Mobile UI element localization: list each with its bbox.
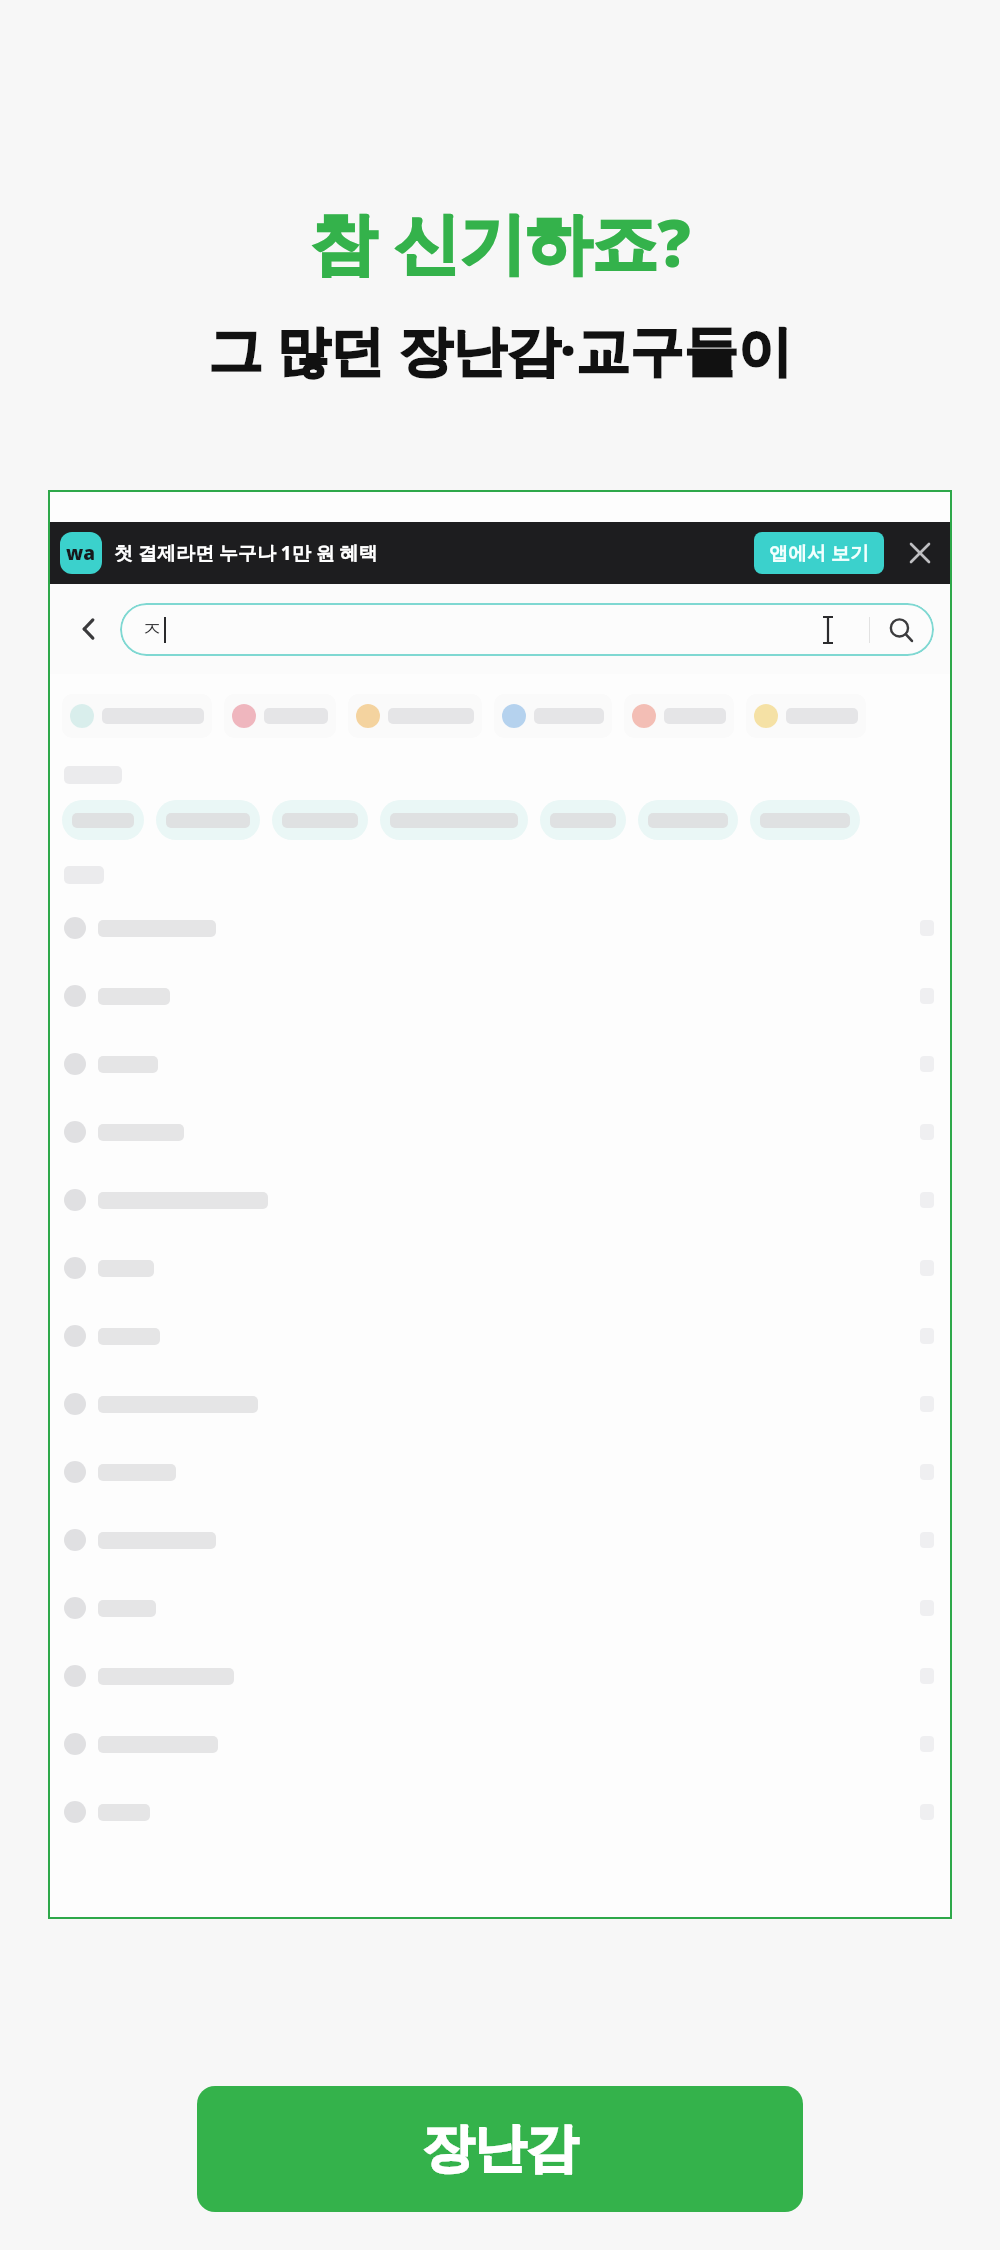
staticText: 첫 결제라면 누구나 1만 원 혜택 [114, 540, 378, 566]
button[interactable] [48, 1506, 952, 1574]
button[interactable] [348, 694, 482, 738]
button[interactable]: 장난감 [197, 2086, 803, 2212]
button[interactable] [272, 800, 368, 840]
button[interactable] [48, 1098, 952, 1166]
button[interactable] [48, 1166, 952, 1234]
staticText: 앱에서 보기 [769, 540, 869, 566]
button[interactable] [156, 800, 260, 840]
button[interactable] [494, 694, 612, 738]
button[interactable] [224, 694, 336, 738]
button[interactable]: Close [900, 533, 940, 573]
button[interactable]: ㅈ [120, 603, 934, 656]
button[interactable] [638, 800, 738, 840]
button[interactable] [540, 800, 626, 840]
button[interactable]: Search [884, 613, 918, 647]
button[interactable] [746, 694, 866, 738]
button[interactable] [48, 1778, 952, 1846]
button[interactable] [48, 1642, 952, 1710]
button[interactable] [48, 1030, 952, 1098]
button[interactable] [62, 800, 144, 840]
button[interactable] [48, 1710, 952, 1778]
button[interactable] [48, 894, 952, 962]
button[interactable] [48, 1302, 952, 1370]
staticText: 장난감 [422, 2116, 578, 2182]
button[interactable]: 앱에서 보기 [754, 532, 884, 574]
button[interactable] [48, 1370, 952, 1438]
staticText: wa [66, 540, 96, 566]
button[interactable]: Back [66, 606, 112, 652]
staticText: 그 많던 장난감·교구들이 [208, 312, 792, 386]
button[interactable] [624, 694, 734, 738]
button[interactable] [380, 800, 528, 840]
button[interactable] [48, 1574, 952, 1642]
button[interactable] [750, 800, 860, 840]
button[interactable] [62, 694, 212, 738]
button[interactable] [48, 962, 952, 1030]
button[interactable]: wa app [60, 532, 102, 574]
staticText: ㅈ [142, 617, 162, 642]
staticText: 참 신기하죠? [310, 196, 691, 286]
button[interactable] [48, 1438, 952, 1506]
button[interactable] [48, 1234, 952, 1302]
